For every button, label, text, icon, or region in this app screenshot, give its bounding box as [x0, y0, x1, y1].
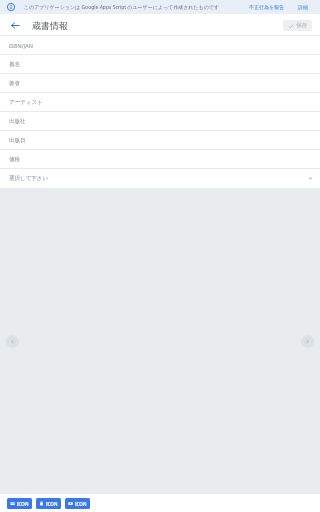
staticText: 不正行為を報告 — [249, 4, 285, 10]
button[interactable]: ICON — [65, 498, 90, 509]
staticText: 書名 — [9, 61, 20, 68]
button[interactable]: ICON — [7, 498, 32, 509]
button[interactable]: 不正行為を報告 — [247, 3, 287, 11]
staticText: ISBN/JAN — [9, 42, 33, 49]
button[interactable]: Back — [8, 18, 22, 32]
button[interactable]: 出版日 — [0, 131, 320, 150]
staticText: ICON — [75, 501, 87, 507]
staticText: 選択して下さい — [9, 175, 49, 182]
button[interactable]: 価格 — [0, 150, 320, 169]
staticText: このアプリケーションは Google Apps Script のユーザーによって… — [24, 4, 220, 11]
button[interactable]: 書名 — [0, 55, 320, 74]
staticText: 出版社 — [9, 118, 26, 125]
staticText: 著者 — [9, 80, 20, 87]
button[interactable]: 著者 — [0, 74, 320, 93]
button[interactable]: ISBN/JAN — [0, 36, 320, 55]
button[interactable]: Next — [301, 335, 314, 348]
button[interactable]: 保存 — [283, 20, 312, 31]
button[interactable]: 出版社 — [0, 112, 320, 131]
staticText: ICON — [17, 501, 29, 507]
button[interactable]: アーティスト — [0, 93, 320, 112]
staticText: 詳細 — [298, 4, 308, 10]
staticText: アーティスト — [9, 99, 43, 106]
button[interactable]: ICON — [36, 498, 61, 509]
staticText: 価格 — [9, 156, 20, 163]
button[interactable]: 選択して下さい — [0, 169, 320, 189]
button[interactable]: Previous — [6, 335, 19, 348]
other: Information — [7, 3, 15, 11]
staticText: 保存 — [296, 22, 307, 29]
staticText: 蔵書情報 — [32, 20, 68, 31]
button[interactable]: 詳細 — [296, 3, 310, 11]
staticText: 出版日 — [9, 137, 26, 144]
staticText: ICON — [46, 501, 58, 507]
